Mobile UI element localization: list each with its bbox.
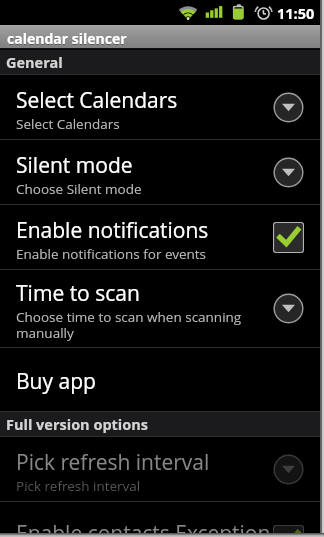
staticText: General xyxy=(6,53,63,73)
staticText: Full version options xyxy=(6,415,148,435)
button[interactable]: Buy app xyxy=(0,348,324,412)
staticText: Pick refresh interval xyxy=(16,477,141,495)
button[interactable]: Open options xyxy=(272,140,304,204)
staticText: calendar silencer xyxy=(7,29,127,48)
staticText: Choose time to scan when scanning manual… xyxy=(16,308,272,342)
staticText: Buy app xyxy=(16,367,96,396)
staticText: 11:50 xyxy=(277,4,315,24)
button[interactable]: Silent mode xyxy=(0,140,324,205)
button[interactable]: Enable contacts Exception xyxy=(0,502,324,537)
staticText: Silent mode xyxy=(16,151,133,180)
button[interactable]: Open options xyxy=(272,437,304,501)
staticText: Choose Silent mode xyxy=(16,180,142,198)
button[interactable]: Enable notifications xyxy=(0,205,324,270)
staticText: Enable notifications for events xyxy=(16,245,207,263)
staticText: Select Calendars xyxy=(16,86,178,115)
staticText: Enable contacts Exception xyxy=(16,519,271,537)
button[interactable]: Time to scan xyxy=(0,270,324,348)
button[interactable]: Open options xyxy=(272,270,304,347)
staticText: Select Calendars xyxy=(16,115,120,133)
staticText: Time to scan xyxy=(16,279,140,308)
staticText: Pick refresh interval xyxy=(16,448,210,477)
button[interactable]: Open options xyxy=(272,75,304,139)
button[interactable]: Pick refresh interval xyxy=(0,437,324,502)
staticText: Enable notifications xyxy=(16,216,209,245)
button[interactable]: Toggle xyxy=(272,205,304,269)
staticText: calendar silencer xyxy=(7,30,127,49)
button[interactable]: Select Calendars xyxy=(0,75,324,140)
button[interactable]: Toggle xyxy=(272,502,304,537)
